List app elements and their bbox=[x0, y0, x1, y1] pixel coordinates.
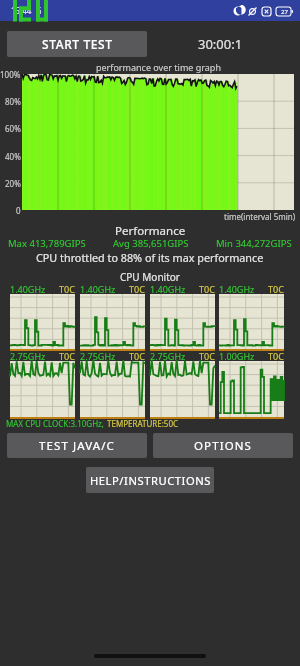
staticText: 1.00GHz bbox=[219, 350, 255, 362]
staticText: T0C bbox=[199, 283, 215, 295]
staticText: 80% bbox=[5, 96, 21, 107]
staticText: Avg 385,651GIPS bbox=[113, 237, 189, 250]
staticText: Min 344,272GIPS bbox=[216, 237, 292, 250]
button[interactable]: HELP/INSTRUCTIONS bbox=[86, 467, 214, 493]
staticText: 100% bbox=[0, 69, 21, 80]
other: Muted bbox=[248, 7, 257, 16]
staticText: 1.40GHz bbox=[10, 283, 46, 295]
staticText: T0C bbox=[268, 283, 284, 295]
staticText: 40% bbox=[5, 151, 21, 162]
staticText: CPU throttled to 88% of its max performa… bbox=[36, 250, 264, 265]
button[interactable]: START TEST bbox=[7, 31, 147, 57]
staticText: 30:00:1 bbox=[198, 35, 243, 53]
staticText: 20% bbox=[5, 178, 21, 189]
staticText: TEST JAVA/C bbox=[39, 438, 115, 454]
staticText: 1.40GHz bbox=[219, 283, 255, 295]
staticText: 1.40GHz bbox=[80, 283, 116, 295]
staticText: T0C bbox=[129, 283, 145, 295]
staticText: 15:44 G bbox=[11, 5, 42, 16]
staticText: 2.75GHz bbox=[10, 350, 46, 362]
staticText: T0C bbox=[59, 350, 75, 362]
staticText: time(interval 5min) bbox=[224, 211, 296, 222]
button[interactable]: TEST JAVA/C bbox=[7, 433, 147, 458]
staticText: 2.75GHz bbox=[80, 350, 116, 362]
staticText: 2.75GHz bbox=[150, 350, 186, 362]
staticText: T0C bbox=[268, 350, 284, 362]
staticText: T0C bbox=[199, 350, 215, 362]
staticText: performance over time graph bbox=[96, 61, 221, 73]
other: Do not disturb bbox=[233, 6, 243, 16]
staticText: 60% bbox=[5, 123, 21, 134]
staticText: T0C bbox=[129, 350, 145, 362]
staticText: TEMPERATURE:50C bbox=[107, 418, 179, 429]
staticText: CPU Monitor bbox=[120, 270, 180, 284]
staticText: OPTIONS bbox=[194, 438, 252, 454]
staticText: 27 bbox=[281, 8, 288, 16]
staticText: T0C bbox=[59, 283, 75, 295]
staticText: Performance bbox=[115, 223, 186, 239]
staticText: HELP/INSTRUCTIONS bbox=[90, 473, 211, 488]
staticText: MAX CPU CLOCK:3.10GHz, bbox=[6, 418, 107, 429]
staticText: 0 bbox=[16, 205, 21, 216]
button[interactable]: OPTIONS bbox=[153, 433, 293, 458]
staticText: 1.40GHz bbox=[150, 283, 186, 295]
staticText: START TEST bbox=[42, 36, 113, 52]
staticText: Max 413,789GIPS bbox=[8, 237, 86, 250]
